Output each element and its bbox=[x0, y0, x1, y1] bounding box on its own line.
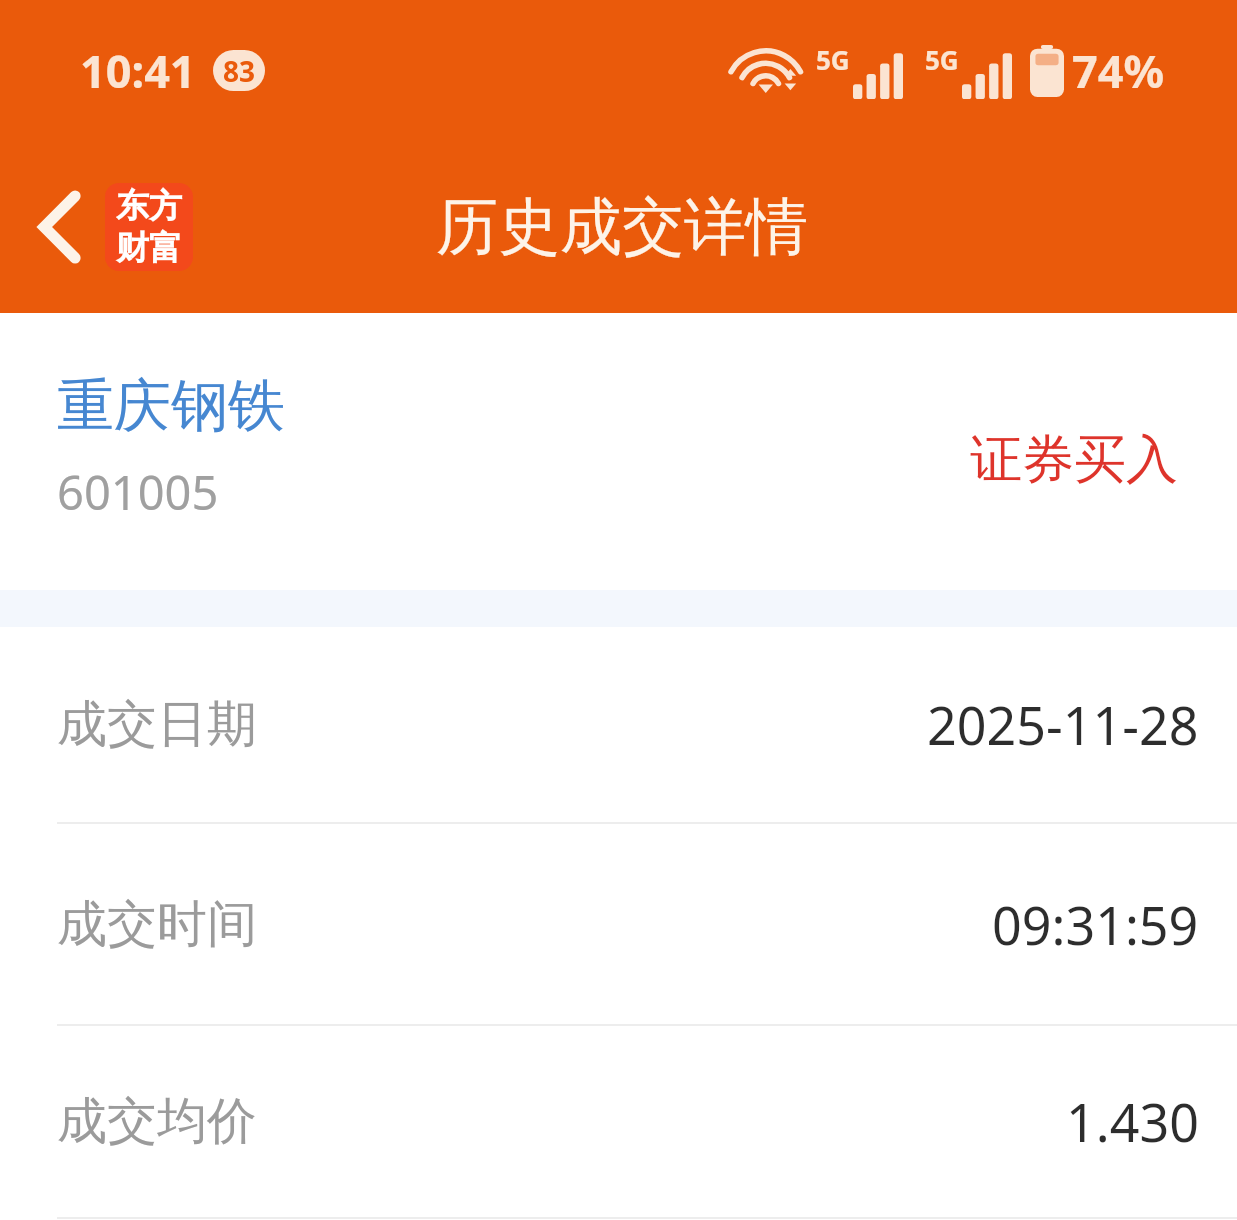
staticText: 重庆钢铁 bbox=[57, 370, 285, 442]
staticText: 74% bbox=[1072, 40, 1165, 101]
button[interactable]: 成交均价 bbox=[0, 1026, 1237, 1217]
staticText: 83 bbox=[223, 52, 256, 90]
button[interactable]: 成交日期 bbox=[0, 627, 1237, 822]
staticText: 10:41 bbox=[80, 40, 196, 101]
staticText: 成交日期 bbox=[57, 693, 257, 756]
staticText: 财富 bbox=[116, 227, 182, 269]
button[interactable]: 东方财富 bbox=[105, 183, 193, 271]
staticText: 东方 bbox=[116, 185, 182, 227]
staticText: 601005 bbox=[57, 460, 219, 524]
button[interactable]: Back bbox=[18, 185, 102, 269]
staticText: 1.430 bbox=[1066, 1086, 1199, 1157]
staticText: 成交时间 bbox=[57, 893, 257, 956]
staticText: 成交均价 bbox=[57, 1090, 257, 1153]
staticText: 5G bbox=[925, 42, 959, 77]
staticText: 历史成交详情 bbox=[436, 188, 808, 266]
staticText: 2025-11-28 bbox=[927, 689, 1199, 760]
button[interactable]: 成交时间 bbox=[0, 824, 1237, 1024]
staticText: 09:31:59 bbox=[992, 889, 1199, 960]
staticText: 5G bbox=[816, 42, 850, 77]
staticText: 证券买入 bbox=[970, 427, 1178, 493]
